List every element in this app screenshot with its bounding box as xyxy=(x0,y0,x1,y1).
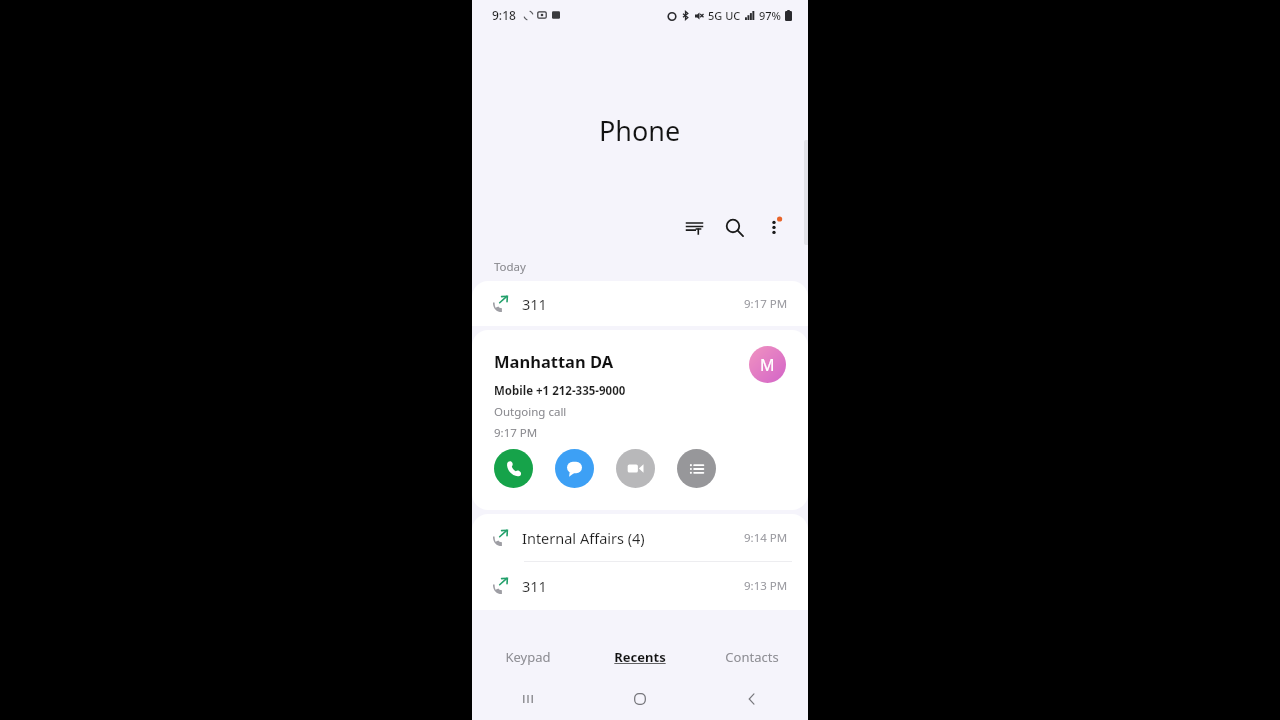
button[interactable]: Internal Affairs (4) xyxy=(472,514,808,562)
button[interactable]: Home xyxy=(584,678,696,720)
staticText: 5G UC xyxy=(708,8,741,23)
staticText: 9:17 PM xyxy=(494,425,538,441)
button[interactable]: Recents xyxy=(584,636,696,678)
button[interactable]: 311 xyxy=(472,562,808,610)
staticText: 9:14 PM xyxy=(744,530,788,546)
button[interactable]: Search xyxy=(714,207,754,247)
staticText: M xyxy=(760,354,775,376)
staticText: Contacts xyxy=(725,648,779,666)
button[interactable]: M xyxy=(749,346,786,383)
staticText: Manhattan DA xyxy=(494,350,614,372)
staticText: Mobile +1 212-335-9000 xyxy=(494,383,626,399)
button[interactable]: Keypad xyxy=(472,636,584,678)
button[interactable]: Message xyxy=(555,449,594,488)
button[interactable]: Recent apps xyxy=(472,678,584,720)
staticText: Outgoing call xyxy=(494,404,567,420)
button[interactable]: Manhattan DA xyxy=(472,330,808,510)
staticText: Recents xyxy=(614,648,666,666)
staticText: 9:17 PM xyxy=(744,296,788,312)
button[interactable]: Back xyxy=(696,678,808,720)
button[interactable]: 311 xyxy=(472,281,808,326)
staticText: 9:13 PM xyxy=(744,578,788,594)
button[interactable]: More options xyxy=(754,207,794,247)
staticText: Keypad xyxy=(505,648,551,666)
staticText: 9:18 xyxy=(492,7,516,23)
staticText: Today xyxy=(494,259,526,275)
staticText: Phone xyxy=(599,112,681,149)
button[interactable]: Video call xyxy=(616,449,655,488)
button[interactable]: Details xyxy=(677,449,716,488)
button[interactable]: Contacts xyxy=(696,636,808,678)
staticText: 311 xyxy=(522,576,547,596)
staticText: Internal Affairs (4) xyxy=(522,528,645,548)
staticText: 97% xyxy=(759,8,781,23)
button[interactable]: Call xyxy=(494,449,533,488)
button[interactable]: Sort xyxy=(674,207,714,247)
staticText: 311 xyxy=(522,294,547,314)
